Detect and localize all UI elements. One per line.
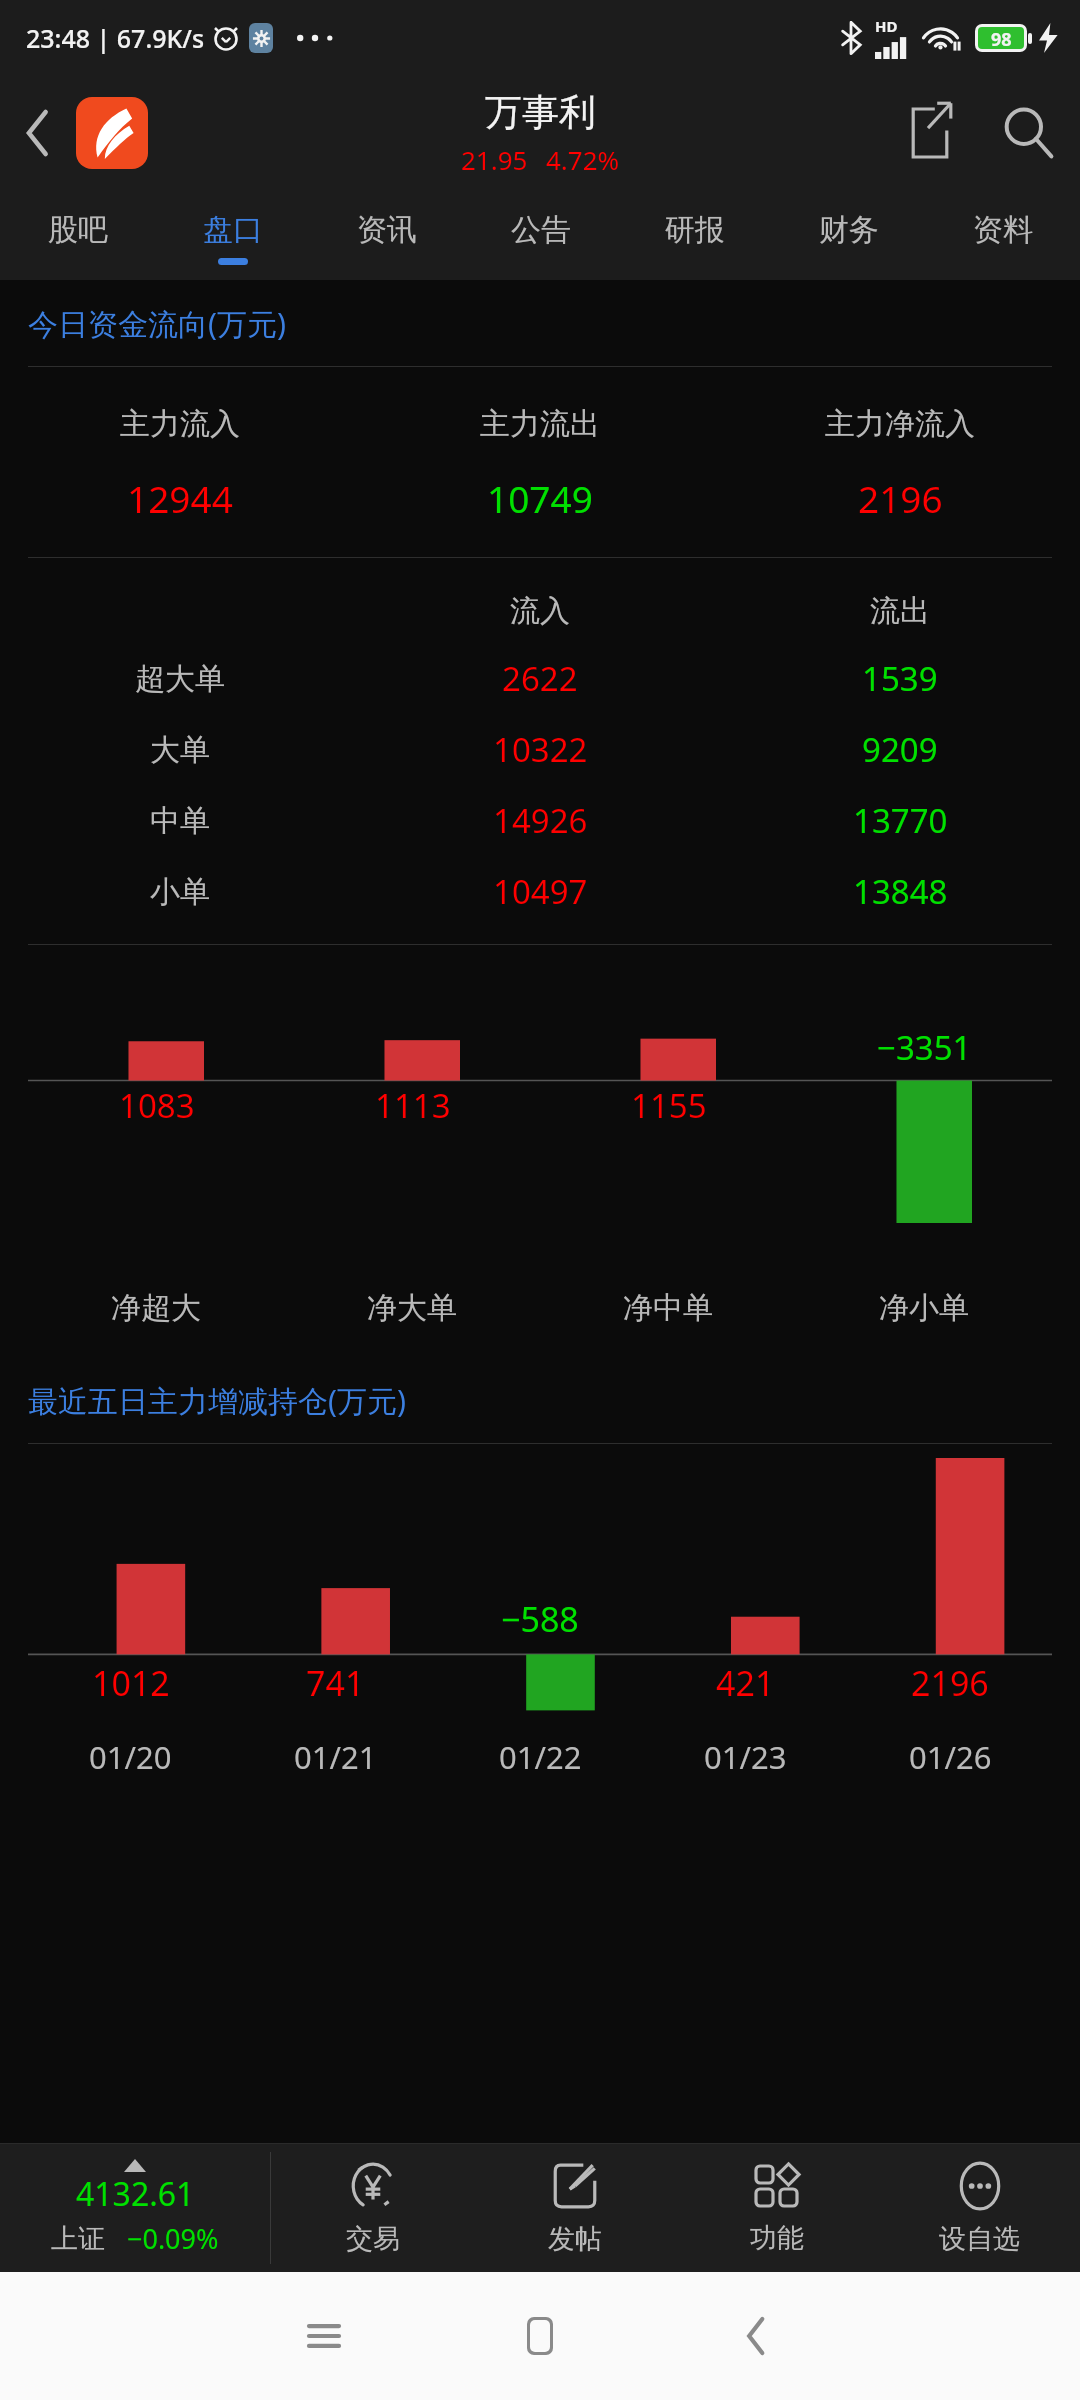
button[interactable]: 资料 [926, 190, 1080, 280]
staticText: 研报 [665, 211, 725, 249]
button[interactable]: 研报 [618, 190, 772, 280]
staticText: 1083 [119, 1083, 195, 1128]
staticText: 4.72% [546, 142, 620, 177]
staticText: 净中单 [623, 1289, 713, 1327]
button[interactable]: 4132.61 [0, 2144, 270, 2272]
staticText: 2196 [911, 1660, 989, 1706]
staticText: 净超大 [111, 1289, 201, 1327]
staticText: 421 [716, 1660, 775, 1706]
staticText: 最近五日主力增减持仓(万元) [28, 1380, 406, 1421]
button[interactable]: 功能 [676, 2144, 878, 2272]
staticText: 1012 [92, 1660, 170, 1706]
staticText: 4132.61 [76, 2172, 195, 2216]
staticText: 1539 [862, 656, 938, 701]
button[interactable]: 设自选 [878, 2144, 1080, 2272]
staticText: 21.95 [461, 142, 528, 177]
staticText: 交易 [346, 2222, 400, 2256]
button[interactable]: 股吧 [0, 190, 155, 280]
button[interactable]: 财务 [772, 190, 926, 280]
staticText: 01/26 [909, 1736, 992, 1778]
staticText: 功能 [750, 2221, 804, 2255]
button[interactable]: Back [648, 2272, 864, 2400]
staticText: 小单 [150, 873, 210, 911]
staticText: 1113 [375, 1083, 451, 1128]
staticText: 净大单 [367, 1289, 457, 1327]
staticText: 大单 [150, 731, 210, 769]
staticText: 741 [306, 1660, 365, 1706]
staticText: 10749 [487, 473, 593, 523]
staticText: 01/21 [294, 1736, 377, 1778]
staticText: 盘口 [203, 211, 263, 249]
button[interactable]: Home [432, 2272, 648, 2400]
staticText: 2196 [858, 473, 943, 523]
staticText: 10497 [493, 869, 588, 914]
staticText: 13770 [853, 798, 948, 843]
staticText: 主力净流入 [825, 405, 975, 443]
staticText: 01/23 [704, 1736, 787, 1778]
staticText: 01/20 [89, 1736, 172, 1778]
staticText: 1155 [631, 1083, 707, 1128]
staticText: 12944 [127, 473, 233, 523]
staticText: 2622 [502, 656, 578, 701]
staticText: 万事利 [485, 89, 596, 136]
staticText: 9209 [862, 727, 938, 772]
button[interactable]: Recent apps [216, 2272, 432, 2400]
staticText: 资讯 [357, 211, 417, 249]
button[interactable]: 发帖 [474, 2144, 676, 2272]
button[interactable]: 盘口 [155, 190, 310, 280]
button[interactable]: 资讯 [310, 190, 464, 280]
staticText: −3351 [877, 1025, 972, 1070]
button[interactable]: Back [0, 95, 76, 171]
staticText: 98 [991, 27, 1012, 49]
staticText: 13848 [853, 869, 948, 914]
staticText: −588 [501, 1596, 579, 1642]
staticText: 上证 [51, 2222, 105, 2256]
staticText: 10322 [493, 727, 588, 772]
staticText: 今日资金流向(万元) [28, 303, 286, 344]
staticText: 公告 [511, 211, 571, 249]
button[interactable]: 交易 [271, 2144, 474, 2272]
staticText: 财务 [819, 211, 879, 249]
staticText: 01/22 [499, 1736, 582, 1778]
staticText: 流出 [870, 592, 930, 630]
staticText: 设自选 [939, 2222, 1020, 2256]
button[interactable]: Share [890, 93, 970, 173]
staticText: 主力流出 [480, 405, 600, 443]
staticText: 中单 [150, 802, 210, 840]
staticText: 14926 [493, 798, 588, 843]
staticText: 资料 [973, 211, 1033, 249]
staticText: 股吧 [48, 211, 108, 249]
staticText: 23:48 | 67.9K/s [26, 21, 205, 55]
staticText: 发帖 [548, 2222, 602, 2256]
button[interactable]: App logo [76, 97, 148, 169]
button[interactable]: 公告 [464, 190, 618, 280]
staticText: 流入 [510, 592, 570, 630]
staticText: 净小单 [879, 1289, 969, 1327]
staticText: HD [875, 16, 898, 36]
button[interactable]: Search [976, 81, 1080, 185]
staticText: −0.09% [127, 2220, 219, 2257]
staticText: 主力流入 [120, 405, 240, 443]
staticText: 超大单 [135, 660, 225, 698]
